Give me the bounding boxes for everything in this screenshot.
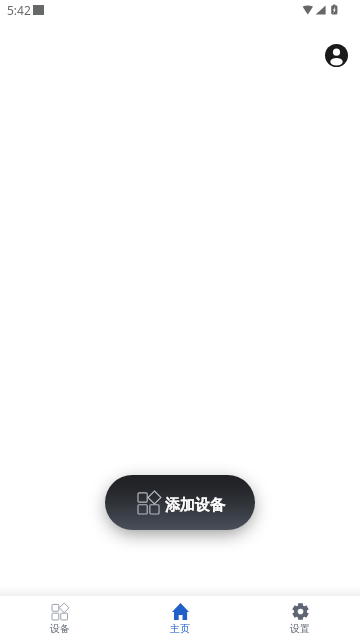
- staticText: 设备: [50, 622, 70, 635]
- button[interactable]: Account: [316, 35, 357, 76]
- staticText: 设置: [290, 622, 310, 635]
- staticText: 主页: [170, 622, 190, 635]
- staticText: 5:42: [7, 2, 31, 18]
- button[interactable]: 添加设备: [105, 475, 255, 530]
- button[interactable]: 设置: [240, 598, 360, 639]
- staticText: 添加设备: [165, 496, 225, 515]
- button[interactable]: 主页: [120, 598, 240, 639]
- button[interactable]: 设备: [0, 598, 120, 639]
